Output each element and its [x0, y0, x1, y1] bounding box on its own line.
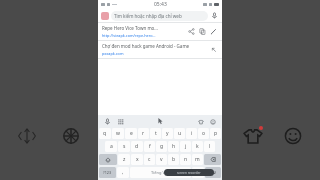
staticText: Tiếng Việt [151, 170, 170, 175]
button[interactable]: z [118, 154, 130, 165]
button[interactable]: n [180, 154, 191, 165]
button[interactable]: f [144, 141, 155, 152]
button[interactable]: i [186, 128, 197, 139]
button[interactable]: u [174, 128, 185, 139]
button[interactable]: Tiếng Việt [130, 167, 191, 178]
staticText: p [214, 130, 218, 137]
button[interactable]: o [198, 128, 209, 139]
button[interactable]: r [138, 128, 149, 139]
button[interactable]: p [210, 128, 221, 139]
staticText: o [202, 130, 206, 137]
button[interactable]: k [192, 141, 203, 152]
button[interactable]: Globe [58, 123, 84, 149]
button[interactable]: w [112, 128, 124, 139]
button[interactable]: Chợ đen mod hack game Android - Game [98, 41, 222, 58]
staticText: pxxapk.com [102, 51, 124, 56]
button[interactable]: Cursor [155, 116, 165, 126]
staticText: w [116, 130, 120, 137]
button[interactable]: v [156, 154, 167, 165]
button[interactable]: c [144, 154, 155, 165]
button[interactable]: l [204, 141, 215, 152]
staticText: e [130, 130, 133, 137]
button[interactable]: Stickers [196, 117, 205, 126]
staticText: . [197, 169, 199, 176]
button[interactable]: Settings [116, 117, 125, 126]
button[interactable]: . [192, 167, 204, 178]
button[interactable]: t [150, 128, 161, 139]
button[interactable]: Share [187, 27, 196, 36]
button[interactable]: Repe Hero Vice Town mo… [98, 23, 222, 40]
staticText: , [122, 169, 124, 176]
staticText: l [209, 143, 211, 150]
staticText: i [191, 130, 193, 137]
button[interactable]: d [131, 141, 143, 152]
button[interactable]: Fill query [209, 45, 218, 54]
staticText: y [166, 130, 169, 137]
staticText: ?123 [103, 170, 112, 175]
button[interactable]: Enter [205, 167, 221, 178]
staticText: Tìm kiếm hoặc nhập địa chỉ web [114, 13, 182, 19]
staticText: a [110, 143, 113, 150]
button[interactable]: Tìm kiếm hoặc nhập địa chỉ web [111, 11, 208, 21]
staticText: u [178, 130, 182, 137]
button[interactable]: h [168, 141, 179, 152]
staticText: v [160, 156, 163, 163]
button[interactable] [101, 12, 109, 20]
button[interactable]: Emoji [208, 117, 217, 126]
button[interactable]: Move [14, 123, 40, 149]
button[interactable]: Copy [198, 27, 207, 36]
button[interactable]: , [117, 167, 129, 178]
staticText: g [160, 143, 164, 150]
button[interactable]: Edit [209, 27, 218, 36]
staticText: Chợ đen mod hack game Android - Game [102, 43, 190, 49]
staticText: 05:43 [154, 1, 167, 8]
staticText: screen recorder [177, 171, 201, 175]
button[interactable]: Shift [99, 154, 117, 165]
button[interactable]: q [99, 128, 111, 139]
staticText: d [135, 143, 139, 150]
staticText: n [184, 156, 188, 163]
staticText: h [172, 143, 176, 150]
button[interactable]: a [105, 141, 117, 152]
button[interactable]: Voice input [103, 117, 112, 126]
staticText: r [142, 130, 145, 137]
button[interactable]: b [168, 154, 179, 165]
button[interactable]: Backspace [204, 154, 221, 165]
button[interactable]: ?123 [99, 167, 116, 178]
staticText: http://vieapk.com/repe-hero… [102, 33, 156, 38]
button[interactable]: s [118, 141, 130, 152]
staticText: b [172, 156, 176, 163]
button[interactable]: Voice search [210, 11, 219, 20]
staticText: Repe Hero Vice Town mo… [102, 25, 158, 31]
button[interactable]: y [162, 128, 173, 139]
staticText: j [185, 143, 187, 150]
staticText: f [149, 143, 151, 150]
staticText: m [195, 156, 200, 163]
button[interactable]: m [192, 154, 203, 165]
staticText: c [148, 156, 151, 163]
button[interactable]: x [131, 154, 143, 165]
button[interactable]: e [125, 128, 137, 139]
staticText: t [155, 130, 157, 137]
staticText: s [123, 143, 126, 150]
button[interactable]: Emoji [280, 123, 306, 149]
button[interactable]: g [156, 141, 167, 152]
staticText: x [136, 156, 139, 163]
staticText: z [123, 156, 126, 163]
staticText: k [196, 143, 199, 150]
staticText: q [103, 130, 107, 137]
button[interactable]: Theme [240, 123, 266, 149]
button[interactable]: j [180, 141, 191, 152]
